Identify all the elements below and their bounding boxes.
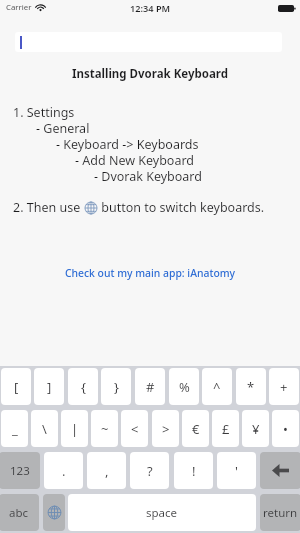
staticText: ^: [213, 378, 221, 396]
button[interactable]: #: [135, 368, 165, 405]
staticText: abc: [9, 505, 29, 521]
staticText: 123: [10, 463, 30, 479]
button[interactable]: Switch keyboard: [43, 494, 65, 531]
staticText: - Add New Keyboard: [75, 152, 195, 169]
button[interactable]: _: [1, 410, 28, 447]
button[interactable]: space: [68, 494, 256, 531]
button[interactable]: %: [169, 368, 199, 405]
button[interactable]: +: [269, 368, 299, 405]
button[interactable]: >: [152, 410, 179, 447]
button[interactable]: ¥: [242, 410, 269, 447]
staticText: +: [280, 378, 288, 396]
button[interactable]: ]: [34, 368, 64, 405]
button[interactable]: 123: [0, 452, 40, 489]
staticText: €: [192, 420, 200, 438]
button[interactable]: {: [68, 368, 98, 405]
button[interactable]: |: [61, 410, 88, 447]
button[interactable]: }: [101, 368, 131, 405]
staticText: #: [146, 378, 155, 396]
staticText: •: [283, 420, 288, 438]
staticText: 12:34 PM: [130, 2, 171, 15]
staticText: *: [247, 378, 255, 396]
button[interactable]: ^: [202, 368, 232, 405]
button[interactable]: \: [31, 410, 58, 447]
staticText: - Dvorak Keyboard: [94, 168, 202, 185]
staticText: \: [42, 420, 47, 438]
button[interactable]: Check out my main app: iAnatomy: [0, 266, 300, 280]
button[interactable]: [: [1, 368, 31, 405]
staticText: 2. Then use: [13, 199, 84, 216]
button[interactable]: •: [272, 410, 299, 447]
staticText: {: [81, 378, 86, 396]
button[interactable]: [15, 32, 282, 52]
button[interactable]: *: [236, 368, 266, 405]
button[interactable]: €: [182, 410, 209, 447]
button[interactable]: return: [260, 494, 300, 531]
staticText: ': [235, 462, 238, 480]
button[interactable]: .: [44, 452, 83, 489]
staticText: %: [179, 378, 190, 396]
staticText: .: [62, 462, 66, 480]
button[interactable]: ~: [91, 410, 118, 447]
staticText: ¥: [252, 420, 260, 438]
button[interactable]: ,: [87, 452, 126, 489]
staticText: [: [14, 378, 19, 396]
staticText: !: [192, 462, 196, 480]
staticText: return: [263, 505, 298, 521]
staticText: space: [146, 505, 178, 521]
staticText: _: [12, 420, 18, 438]
staticText: - General: [36, 120, 90, 137]
staticText: ]: [47, 378, 52, 396]
staticText: - Keyboard -> Keyboards: [56, 136, 199, 153]
button[interactable]: abc: [0, 494, 39, 531]
button[interactable]: Backspace: [260, 452, 300, 489]
staticText: ~: [101, 420, 109, 438]
staticText: button to switch keyboards.: [98, 199, 265, 216]
staticText: Installing Dvorak Keyboard: [0, 66, 300, 82]
staticText: >: [162, 420, 170, 438]
staticText: |: [71, 420, 79, 438]
staticText: }: [114, 378, 119, 396]
staticText: ?: [147, 462, 153, 480]
staticText: Carrier: [6, 2, 32, 13]
button[interactable]: <: [121, 410, 148, 447]
staticText: <: [131, 420, 139, 438]
button[interactable]: !: [174, 452, 213, 489]
button[interactable]: £: [212, 410, 239, 447]
button[interactable]: ?: [130, 452, 169, 489]
staticText: 1. Settings: [13, 104, 75, 121]
button[interactable]: ': [217, 452, 256, 489]
staticText: ,: [105, 462, 109, 480]
staticText: £: [222, 420, 230, 438]
